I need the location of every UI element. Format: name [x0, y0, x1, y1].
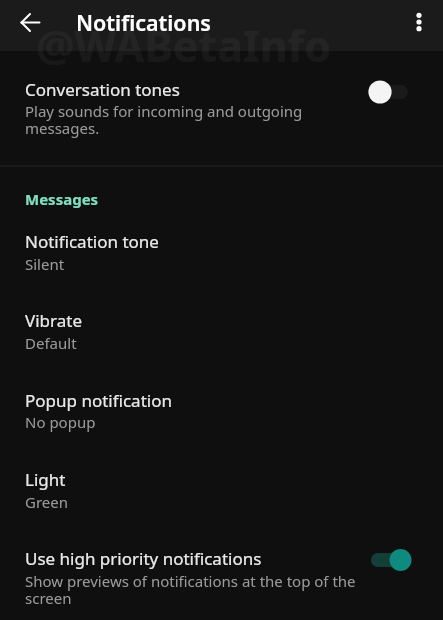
staticText: messages.	[25, 118, 100, 138]
staticText: Green	[25, 492, 69, 512]
button[interactable]	[0, 62, 443, 146]
staticText: Show previews of notifications at the to…	[25, 571, 356, 591]
staticText: Vibrate	[25, 309, 82, 332]
staticText: Silent	[25, 254, 65, 274]
button[interactable]	[0, 458, 443, 520]
button[interactable]: Toggle on	[364, 536, 420, 584]
staticText: Notifications	[76, 8, 211, 37]
staticText: Popup notification	[25, 389, 172, 412]
button[interactable]	[0, 537, 443, 615]
staticText: Default	[25, 333, 77, 353]
staticText: Use high priority notifications	[25, 547, 262, 570]
button[interactable]: Toggle off	[364, 68, 420, 116]
staticText: Notification tone	[25, 230, 159, 253]
button[interactable]	[0, 379, 443, 441]
button[interactable]	[0, 220, 443, 282]
staticText: @WABetaInfo	[36, 16, 332, 75]
staticText: screen	[25, 588, 72, 608]
staticText: No popup	[25, 412, 96, 432]
button[interactable]	[0, 299, 443, 361]
staticText: Play sounds for incoming and outgoing	[25, 101, 303, 121]
button[interactable]: More options	[396, 0, 442, 44]
staticText: Conversation tones	[25, 78, 180, 101]
staticText: Light	[25, 468, 66, 491]
button[interactable]: Back	[5, 0, 55, 51]
staticText: Messages	[25, 189, 99, 209]
